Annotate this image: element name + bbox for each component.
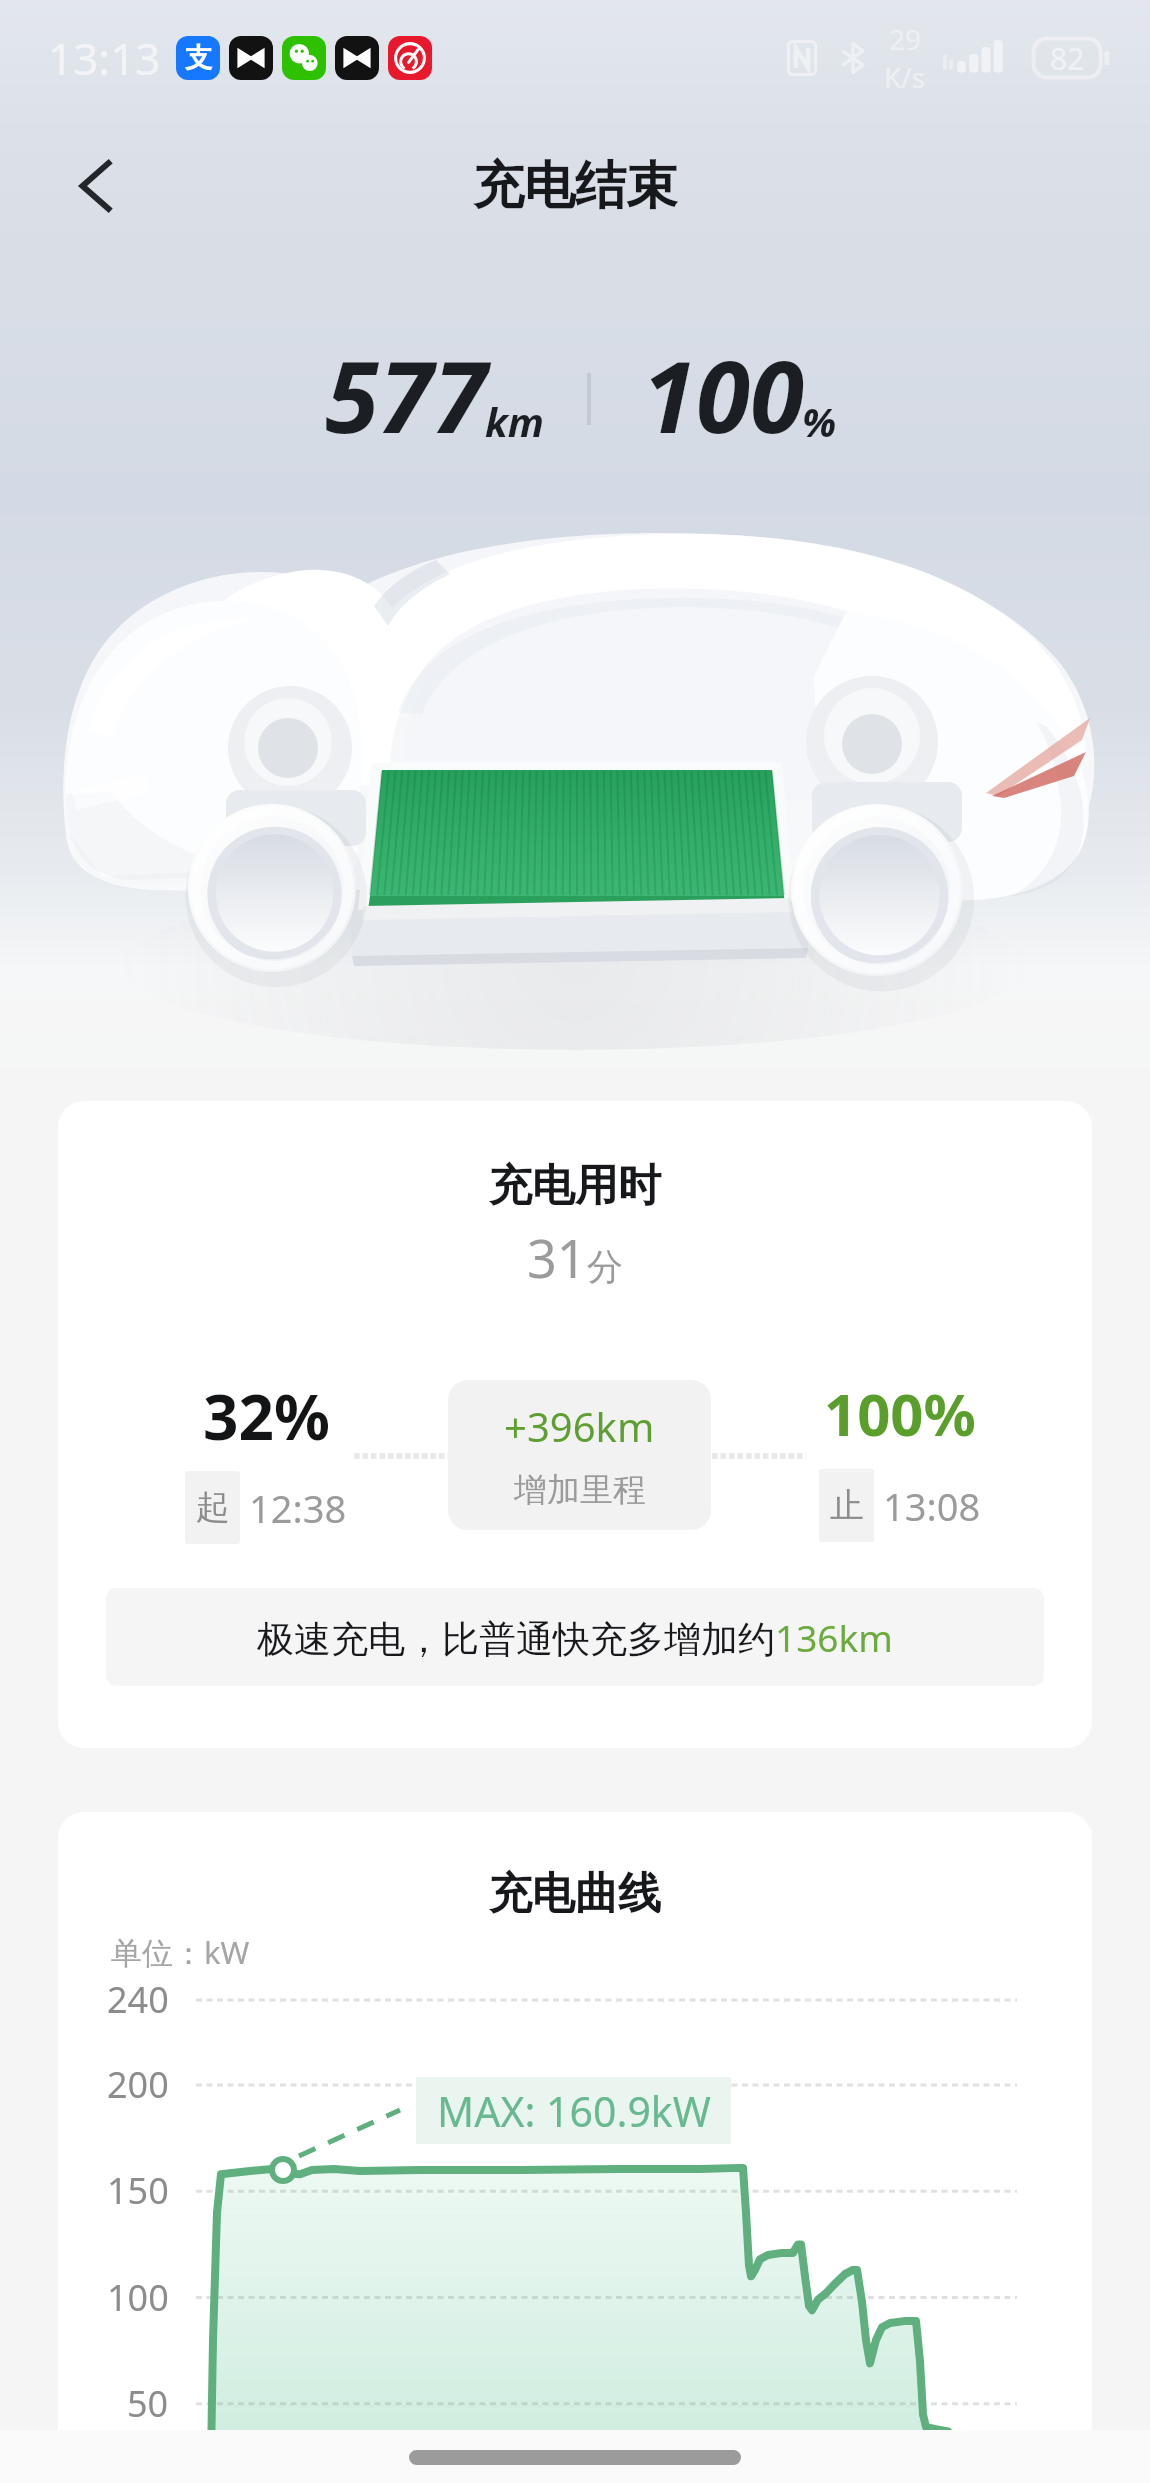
staticText: 支 (185, 41, 212, 75)
staticText: 577 (325, 328, 487, 461)
staticText: 240 (107, 1975, 169, 2024)
staticText: 200 (107, 2060, 169, 2109)
staticText: 充电结束 (473, 154, 677, 218)
staticText: 31 (527, 1222, 587, 1293)
staticText: 极速充电，比普通快充多增加约136km (257, 1612, 893, 1663)
staticText: 150 (107, 2166, 169, 2215)
staticText: 100% (824, 1374, 976, 1453)
staticText: 50 (127, 2379, 169, 2428)
staticText: 单位：kW (111, 1931, 250, 1973)
staticText: 100 (107, 2273, 169, 2322)
staticText: 13:13 (48, 28, 161, 88)
staticText: 充电曲线 (58, 1867, 1092, 1921)
staticText: 32% (203, 1374, 330, 1458)
staticText: 充电用时 (489, 1159, 661, 1213)
staticText: 分 (587, 1244, 623, 1289)
staticText: km (485, 394, 544, 448)
staticText: 29 (889, 20, 922, 58)
staticText: 增加里程 (514, 1469, 646, 1511)
staticText: 起 (196, 1486, 230, 1529)
staticText: K/s (884, 58, 926, 96)
staticText: % (802, 394, 837, 448)
staticText: 100 (642, 328, 804, 461)
staticText: MAX: 160.9kW (437, 2083, 711, 2139)
staticText: 13:08 (883, 1480, 981, 1532)
staticText: 82 (1050, 38, 1085, 79)
staticText: 12:38 (249, 1482, 347, 1534)
staticText: +396km (504, 1399, 655, 1453)
staticText: 止 (830, 1484, 864, 1527)
button[interactable]: Back (44, 134, 148, 238)
